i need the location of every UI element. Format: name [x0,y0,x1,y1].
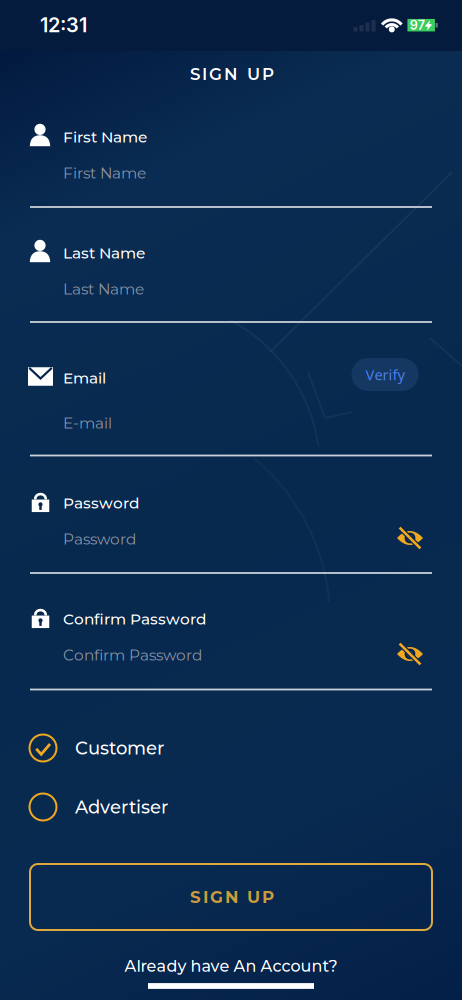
staticText: SIGN UP [190,887,274,907]
staticText: Password [63,530,136,548]
staticText: First Name [63,128,147,146]
staticText: E-mail [63,414,112,432]
staticText: SIGN UP [190,64,274,84]
staticText: 97 [410,17,425,33]
staticText: Email [63,369,106,387]
staticText: Customer [75,737,164,759]
staticText: 12:31 [40,13,87,37]
staticText: Advertiser [75,796,168,818]
staticText: Already have An Account? [124,956,337,976]
staticText: Confirm Password [63,646,202,664]
staticText: Last Name [63,280,144,298]
staticText: Verify [365,365,404,384]
staticText: Password [63,494,139,512]
staticText: First Name [63,164,146,182]
staticText: Last Name [63,244,145,262]
staticText: Confirm Password [63,610,206,628]
